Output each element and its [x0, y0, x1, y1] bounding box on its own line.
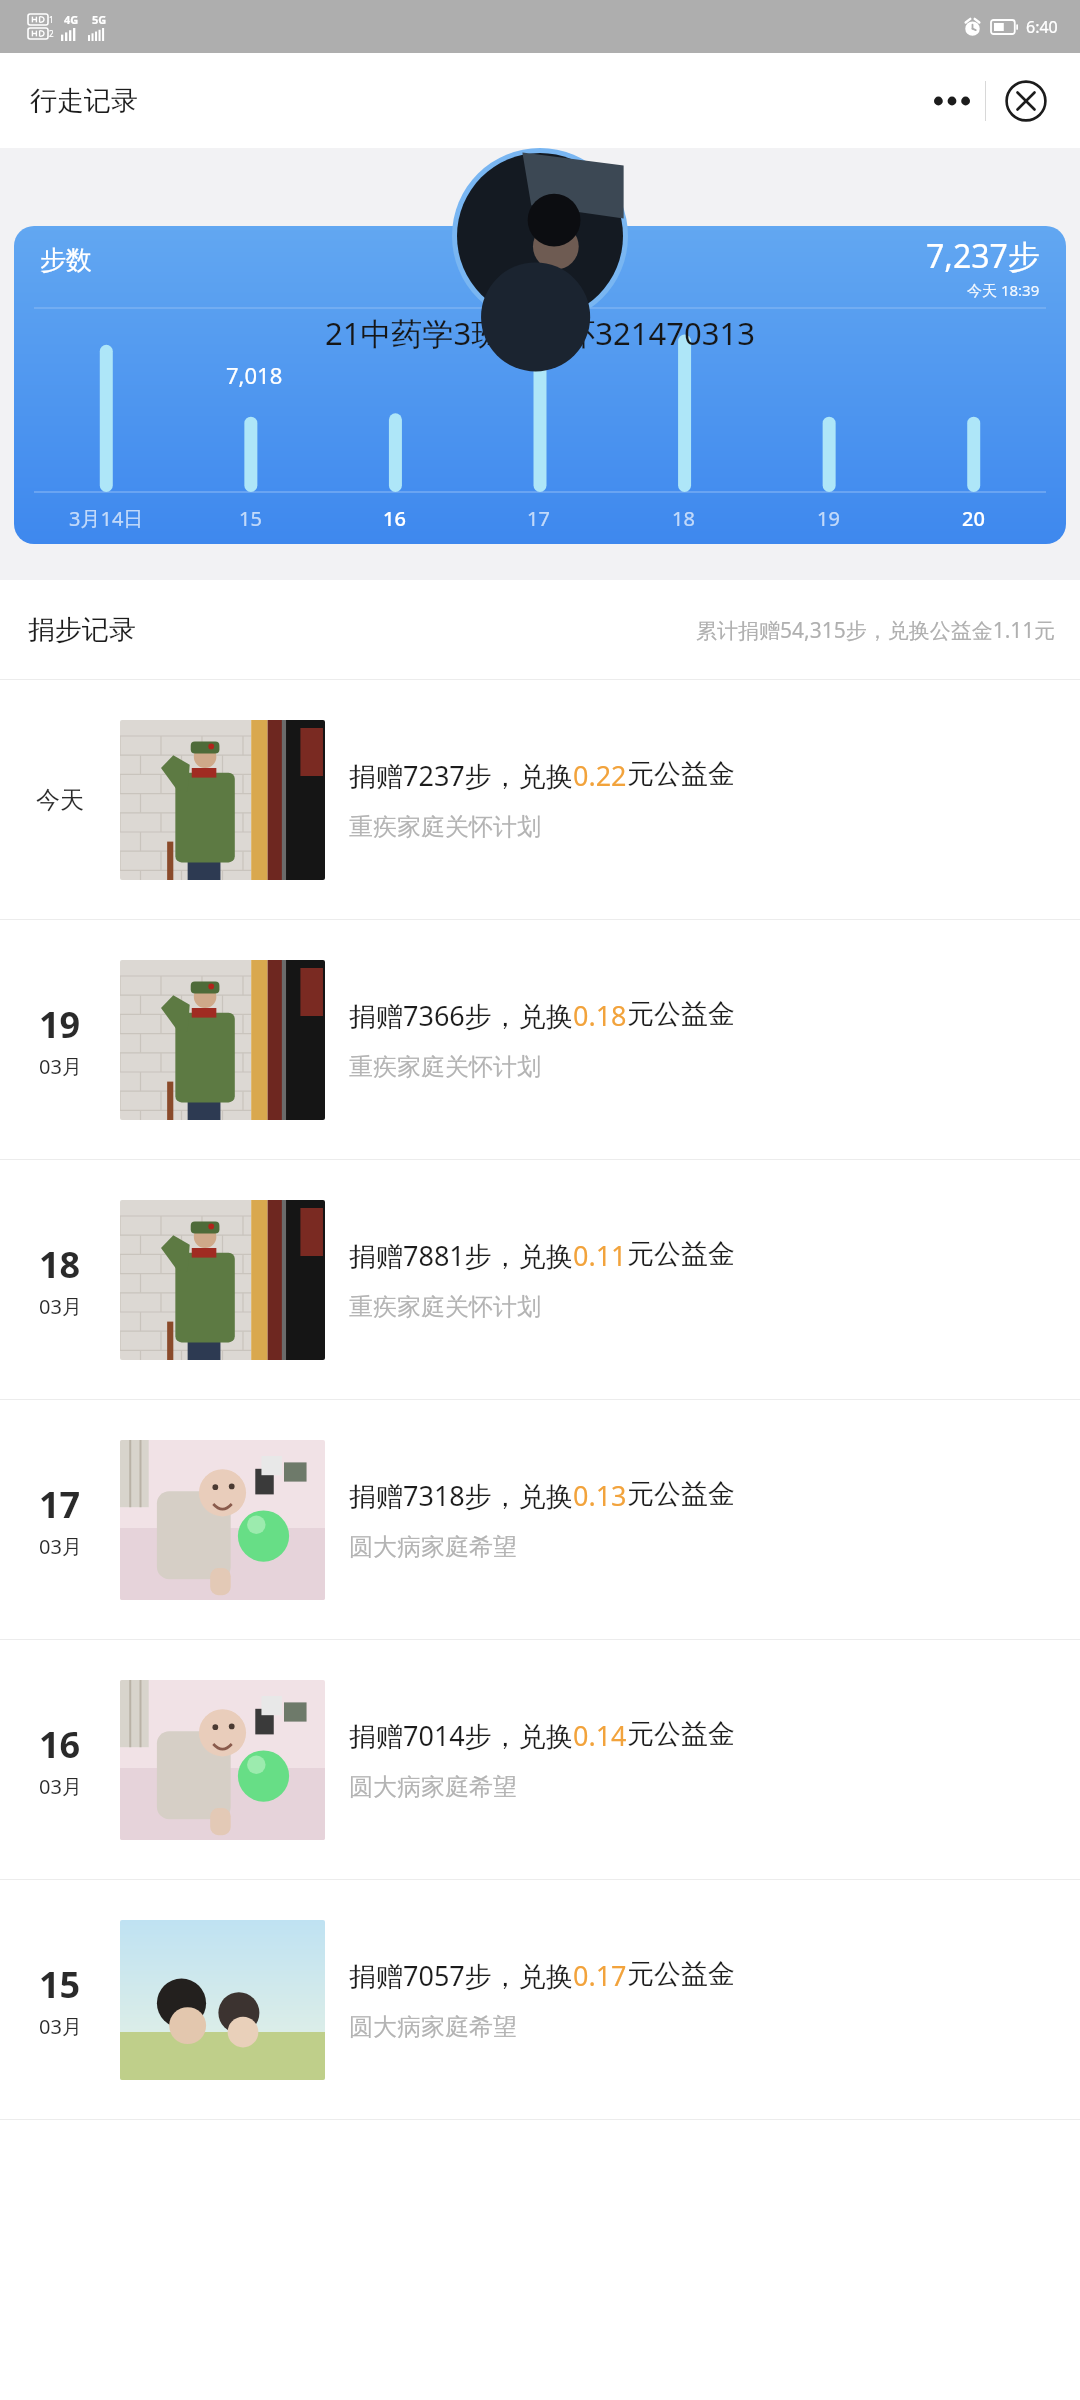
staticText: 重疾家庭关怀计划 [349, 812, 541, 842]
button[interactable]: Close [996, 71, 1056, 131]
staticText: 0.14 [573, 1717, 627, 1754]
button[interactable]: 16 [0, 1640, 1080, 1880]
staticText: 18 [39, 1240, 81, 1289]
staticText: 21中药学3班陈梓怀321470313 [325, 312, 755, 354]
staticText: 捐赠7237步，兑换 [349, 757, 573, 794]
staticText: 步数 [40, 244, 92, 277]
staticText: 元公益金 [627, 1237, 735, 1271]
staticText: 20 [962, 505, 985, 532]
staticText: 5G [92, 12, 107, 27]
button[interactable]: Profile avatar [452, 148, 628, 324]
staticText: 累计捐赠54,315步，兑换公益金1.11元 [696, 616, 1056, 645]
staticText: 圆大病家庭希望 [349, 1532, 517, 1562]
staticText: 元公益金 [627, 1717, 735, 1751]
staticText: 捐步记录 [28, 613, 136, 647]
staticText: 捐赠7014步，兑换 [349, 1717, 573, 1754]
staticText: 03月 [39, 2013, 82, 2040]
staticText: 03月 [39, 1773, 82, 1800]
staticText: 捐赠7881步，兑换 [349, 1237, 573, 1274]
staticText: 19 [817, 505, 840, 532]
button[interactable]: 19 [0, 920, 1080, 1160]
button[interactable]: 18 [0, 1160, 1080, 1400]
staticText: 0.22 [573, 757, 627, 794]
staticText: 今天 [36, 785, 84, 815]
staticText: 圆大病家庭希望 [349, 1772, 517, 1802]
button[interactable]: 步数 [14, 226, 1066, 544]
staticText: 元公益金 [627, 757, 735, 791]
staticText: 元公益金 [627, 1957, 735, 1991]
staticText: 16 [39, 1720, 81, 1769]
staticText: 0.13 [573, 1477, 627, 1514]
staticText: 捐赠7366步，兑换 [349, 997, 573, 1034]
staticText: 19 [39, 1000, 81, 1049]
staticText: 圆大病家庭希望 [349, 2012, 517, 2042]
staticText: 15 [239, 505, 262, 532]
button[interactable]: 今天 [0, 680, 1080, 920]
staticText: 捐赠7318步，兑换 [349, 1477, 573, 1514]
staticText: 0.17 [573, 1957, 627, 1994]
staticText: 6:40 [1026, 16, 1058, 38]
staticText: 0.18 [573, 997, 627, 1034]
staticText: 17 [39, 1480, 81, 1529]
staticText: 7,018 [226, 360, 283, 390]
staticText: 18 [672, 505, 695, 532]
staticText: 重疾家庭关怀计划 [349, 1292, 541, 1322]
staticText: 17 [527, 505, 550, 532]
staticText: 03月 [39, 1293, 82, 1320]
staticText: 行走记录 [30, 84, 138, 118]
staticText: 捐赠7057步，兑换 [349, 1957, 573, 1994]
staticText: 7,237步 [926, 234, 1040, 278]
staticText: 重疾家庭关怀计划 [349, 1052, 541, 1082]
staticText: 2 [49, 28, 54, 39]
staticText: 03月 [39, 1053, 82, 1080]
button[interactable]: More options [925, 74, 979, 128]
staticText: 元公益金 [627, 997, 735, 1031]
staticText: 4G [64, 12, 79, 27]
staticText: 1 [49, 14, 54, 25]
staticText: 03月 [39, 1533, 82, 1560]
button[interactable]: 15 [0, 1880, 1080, 2120]
staticText: 元公益金 [627, 1477, 735, 1511]
staticText: 今天 18:39 [967, 280, 1040, 300]
staticText: 3月14日 [69, 505, 144, 532]
button[interactable]: 17 [0, 1400, 1080, 1640]
staticText: 0.11 [573, 1237, 627, 1274]
staticText: 15 [39, 1960, 81, 2009]
staticText: 16 [383, 505, 406, 532]
